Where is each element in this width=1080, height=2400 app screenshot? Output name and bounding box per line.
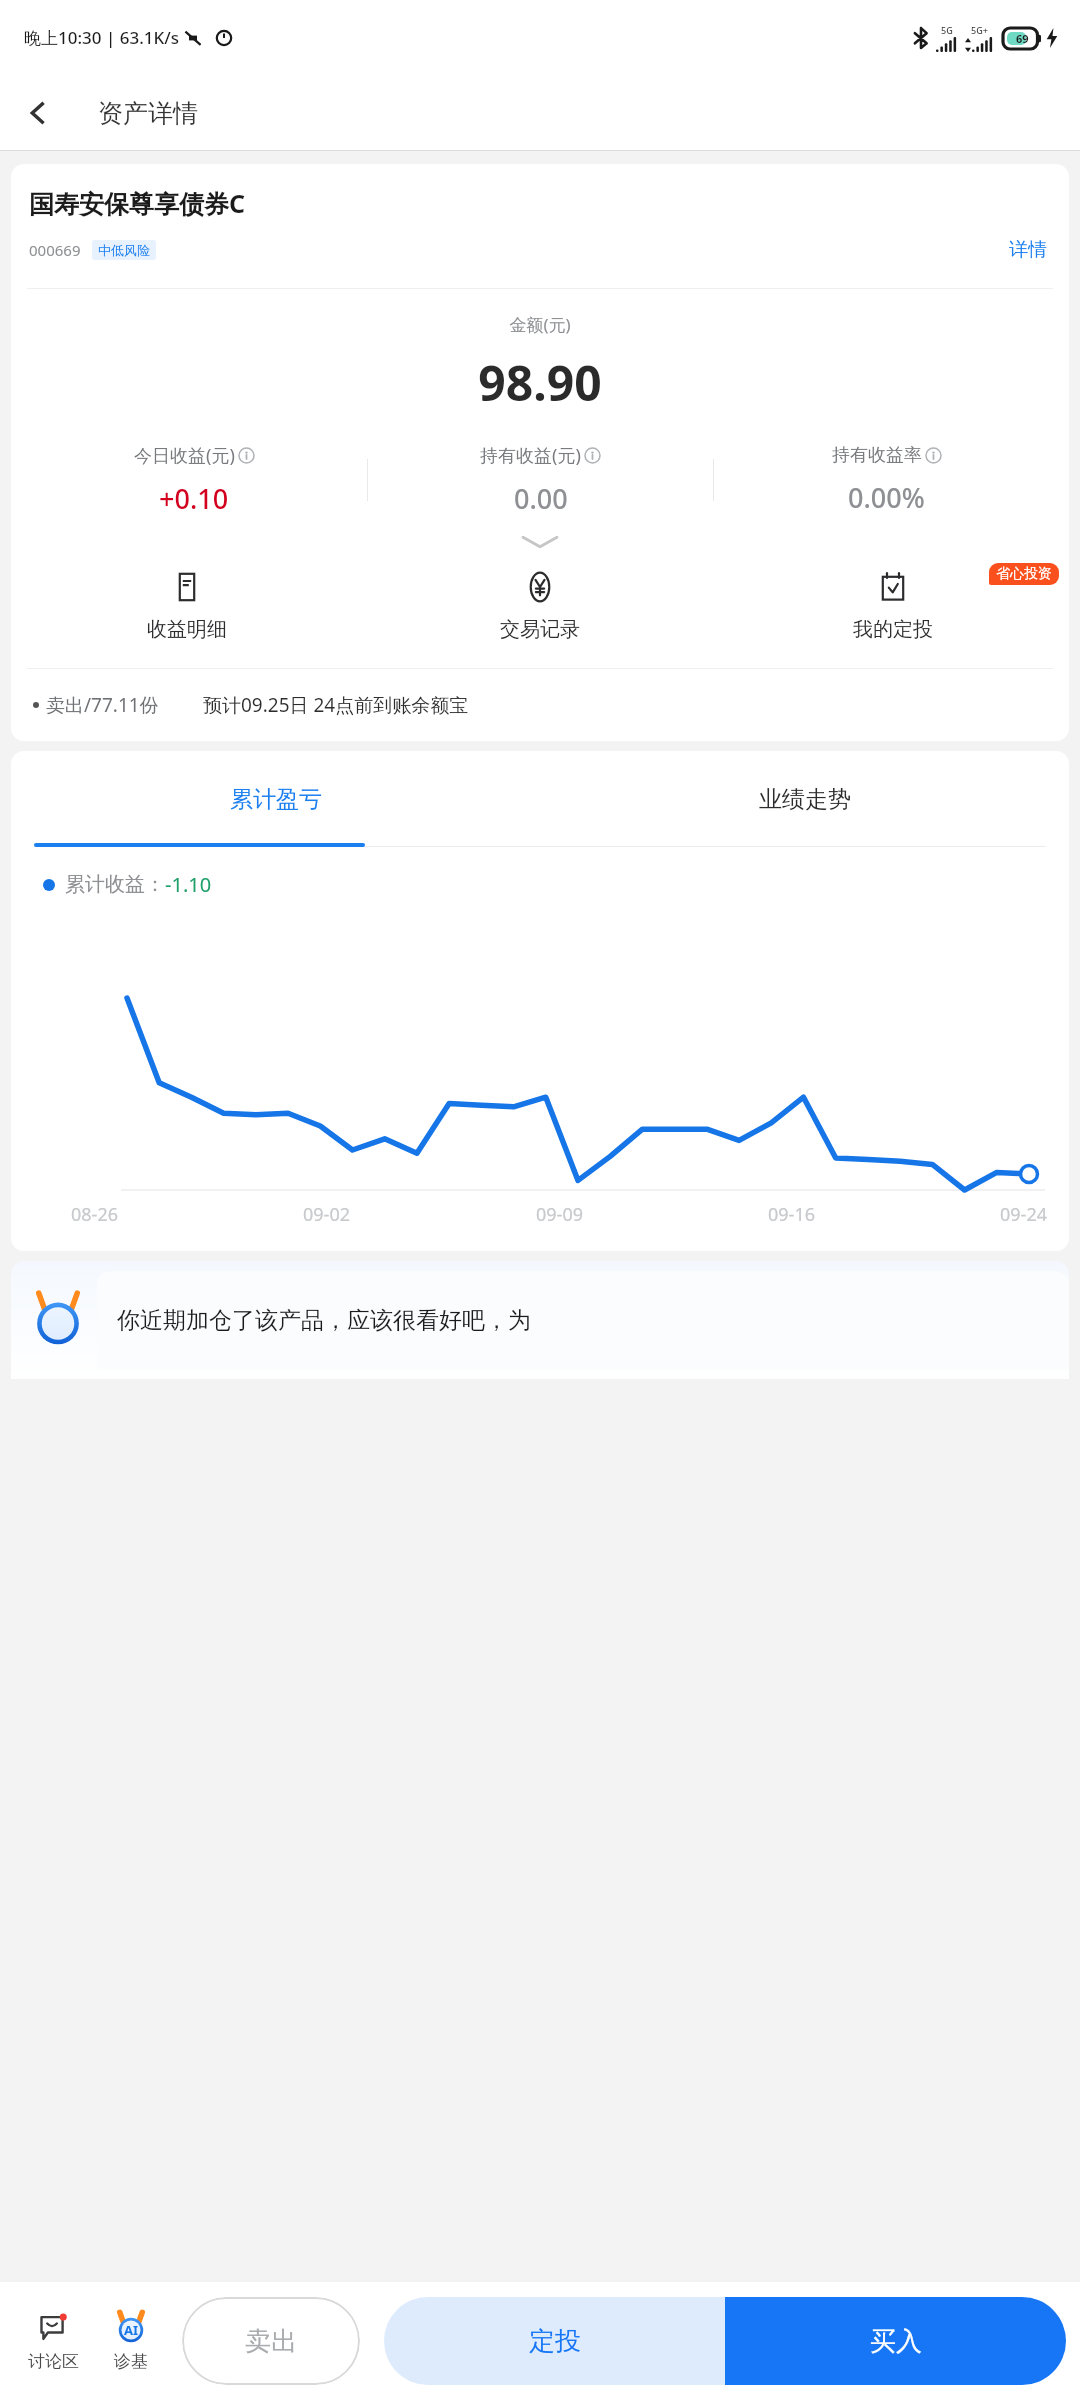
staticText: 累计收益：: [65, 872, 165, 897]
staticText: 0.00%: [848, 479, 925, 516]
button[interactable]: 讨论区: [14, 2310, 92, 2372]
staticText: 省心投资: [996, 565, 1052, 583]
staticText: 000669: [29, 240, 81, 260]
staticText: 买入: [870, 2325, 922, 2358]
staticText: +0.10: [159, 480, 229, 517]
staticText: 69: [1016, 31, 1029, 46]
staticText: 累计盈亏: [230, 785, 322, 814]
staticText: 卖出/77.11份: [46, 692, 159, 718]
staticText: 我的定投: [853, 617, 933, 642]
button[interactable]: 累计盈亏: [11, 751, 540, 847]
staticText: 5G+: [971, 24, 988, 36]
button[interactable]: 我的定投: [716, 563, 1069, 648]
staticText: 你近期加仓了该产品，应该很看好吧，为: [117, 1306, 531, 1335]
button[interactable]: Back: [12, 87, 64, 139]
staticText: 持有收益(元): [480, 443, 581, 468]
staticText: 预计09.25日 24点前到账余额宝: [203, 692, 469, 718]
staticText: 交易记录: [500, 617, 580, 642]
staticText: 收益明细: [147, 617, 227, 642]
button[interactable]: AI: [92, 2310, 170, 2372]
button[interactable]: 收益明细: [11, 563, 363, 648]
button[interactable]: 买入: [725, 2297, 1066, 2385]
staticText: 卖出: [245, 2325, 297, 2358]
staticText: 国寿安保尊享债券C: [29, 186, 246, 220]
staticText: 08-26: [71, 1202, 118, 1227]
staticText: 定投: [529, 2325, 581, 2358]
staticText: 09-16: [768, 1202, 815, 1227]
button[interactable]: 持有收益率: [714, 437, 1059, 523]
other: AI assistant: [29, 1291, 87, 1349]
button[interactable]: 详情: [1005, 234, 1051, 266]
staticText: 详情: [1009, 238, 1047, 262]
staticText: -1.10: [165, 871, 212, 898]
staticText: 今日收益(元): [134, 443, 235, 468]
staticText: 资产详情: [98, 98, 198, 129]
staticText: 中低风险: [98, 242, 150, 258]
staticText: 09-09: [536, 1202, 583, 1227]
button[interactable]: 业绩走势: [540, 751, 1069, 847]
staticText: 09-02: [303, 1202, 350, 1227]
staticText: AI: [124, 2321, 139, 2339]
staticText: 讨论区: [28, 2351, 79, 2372]
button[interactable]: 交易记录: [363, 563, 716, 648]
staticText: 5G: [941, 24, 953, 36]
staticText: 0.00: [514, 480, 568, 517]
staticText: 持有收益率: [832, 444, 922, 467]
button[interactable]: 卖出: [182, 2297, 360, 2385]
button[interactable]: AI assistant: [11, 1261, 1069, 1379]
staticText: 金额(元): [11, 313, 1069, 336]
staticText: 晚上10:30 | 63.1K/s: [24, 26, 180, 49]
button[interactable]: 定投: [384, 2297, 725, 2385]
button[interactable]: 持有收益(元): [368, 437, 713, 523]
staticText: 业绩走势: [759, 785, 851, 814]
staticText: 09-24: [1000, 1202, 1047, 1227]
button[interactable]: 今日收益(元): [21, 437, 367, 523]
staticText: 诊基: [114, 2351, 148, 2372]
staticText: 98.90: [11, 350, 1069, 415]
